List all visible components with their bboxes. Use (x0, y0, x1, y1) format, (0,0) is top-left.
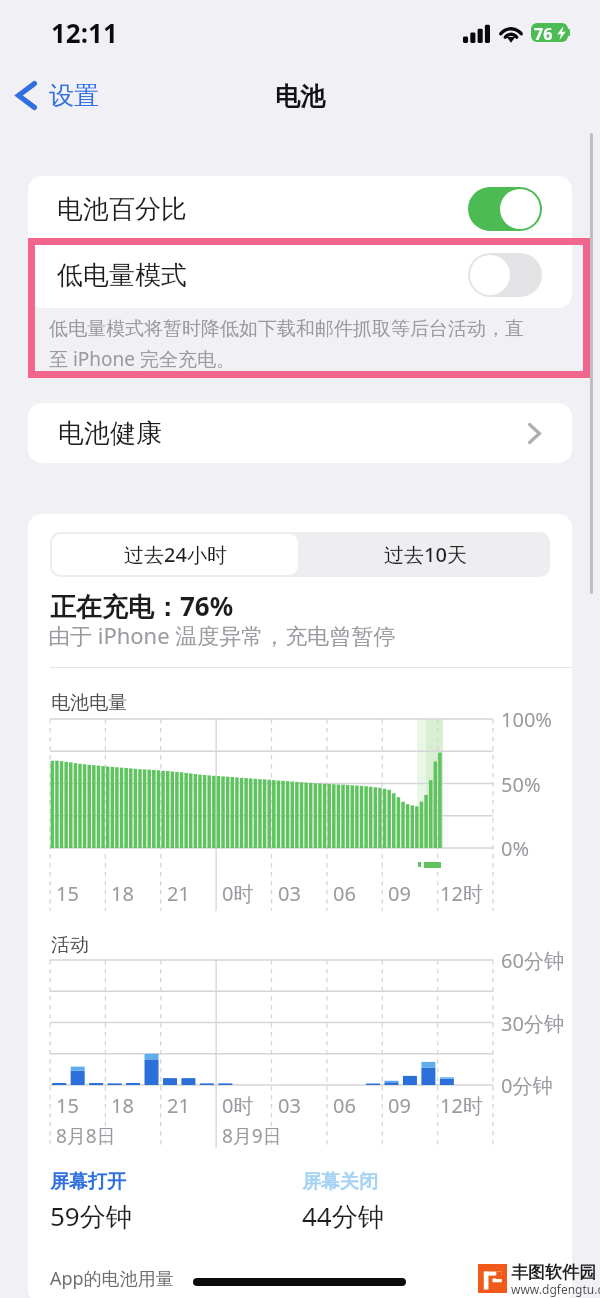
staticText: 电池健康 (58, 417, 162, 450)
staticText: 低电量模式将暂时降低如下载和邮件抓取等后台活动，直 至 iPhone 完全充电。 (49, 317, 524, 371)
staticText: 0% (501, 835, 530, 862)
staticText: 电池电量 (51, 691, 127, 715)
staticText: 59分钟 (50, 1198, 132, 1234)
staticText: www.dgfengtu.com (511, 1281, 600, 1297)
staticText: 76 (534, 23, 553, 42)
staticText: 设置 (49, 80, 99, 111)
staticText: 屏幕打开 (50, 1170, 126, 1194)
staticText: 06 (333, 880, 356, 907)
staticText: 09 (388, 880, 411, 907)
staticText: 8月8日 (56, 1123, 116, 1149)
button[interactable]: On (468, 187, 542, 231)
button[interactable]: 过去24小时 (52, 534, 298, 575)
staticText: 正在充电：76% (50, 588, 234, 624)
staticText: 15 (56, 1092, 79, 1119)
staticText: 低电量模式 (57, 259, 187, 292)
staticText: 由于 iPhone 温度异常，充电曾暂停 (48, 620, 396, 650)
staticText: 21 (167, 1092, 190, 1119)
staticText: 8月9日 (222, 1123, 282, 1149)
button[interactable]: Off (468, 253, 542, 297)
button[interactable]: 低电量模式 (57, 242, 542, 308)
staticText: 电池百分比 (57, 193, 187, 226)
staticText: 活动 (51, 933, 89, 957)
staticText: 电池 (275, 81, 325, 112)
staticText: 03 (278, 880, 301, 907)
staticText: 0时 (222, 880, 254, 907)
staticText: 21 (167, 880, 190, 907)
staticText: 06 (333, 1092, 356, 1119)
staticText: 60分钟 (501, 947, 564, 974)
button[interactable]: 设置 (16, 80, 99, 111)
staticText: 03 (278, 1092, 301, 1119)
staticText: 12时 (440, 1092, 483, 1119)
staticText: 0时 (222, 1092, 254, 1119)
staticText: 100% (501, 706, 552, 733)
button[interactable]: 过去10天 (300, 532, 550, 577)
staticText: 0分钟 (501, 1072, 553, 1099)
staticText: 过去24小时 (124, 541, 227, 568)
staticText: App的电池用量 (50, 1266, 174, 1291)
staticText: 屏幕关闭 (302, 1170, 378, 1194)
staticText: 12时 (440, 880, 483, 907)
button[interactable]: 电池健康 (28, 403, 572, 463)
staticText: 09 (388, 1092, 411, 1119)
staticText: 过去10天 (384, 541, 467, 568)
staticText: 50% (501, 771, 541, 798)
staticText: 12:11 (51, 15, 118, 50)
button[interactable]: 电池百分比 (57, 176, 542, 242)
staticText: 丰图软件园 (511, 1262, 596, 1283)
staticText: 18 (111, 880, 134, 907)
staticText: 44分钟 (302, 1198, 384, 1234)
staticText: 15 (56, 880, 79, 907)
staticText: 30分钟 (501, 1010, 564, 1037)
staticText: 18 (111, 1092, 134, 1119)
